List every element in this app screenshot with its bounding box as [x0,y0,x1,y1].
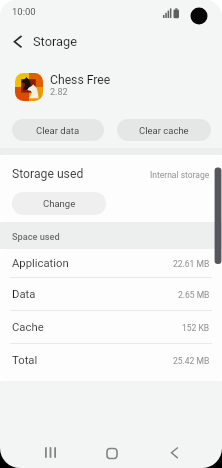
button[interactable] [38,439,64,463]
staticText: 152 KB [182,323,210,333]
button[interactable]: Change [12,192,106,215]
staticText: 22.61 MB [173,259,210,269]
staticText: 2.65 MB [178,290,210,300]
staticText: Clear cache [139,125,189,136]
staticText: 10:00 [12,6,36,17]
button[interactable]: Clear data [12,119,104,141]
staticText: Chess Free [50,73,111,87]
button[interactable] [99,439,125,463]
staticText: Storage [33,34,77,49]
staticText: Internal storage [150,170,210,180]
staticText: Application [12,257,69,270]
button[interactable] [163,439,189,463]
staticText: Storage used [12,167,84,181]
staticText: Data [12,288,36,301]
staticText: Clear data [36,125,80,136]
button[interactable]: Cache [0,311,222,344]
button[interactable]: Total [0,344,222,377]
button[interactable] [6,32,32,52]
button[interactable]: Data [0,278,222,311]
button[interactable]: Clear cache [117,119,211,141]
staticText: 25.42 MB [173,356,210,366]
staticText: Cache [12,321,44,334]
staticText: 2.82 [50,87,68,98]
staticText: Change [43,198,76,209]
staticText: Space used [12,231,60,242]
staticText: Total [12,354,38,367]
button[interactable]: Application [0,249,222,278]
